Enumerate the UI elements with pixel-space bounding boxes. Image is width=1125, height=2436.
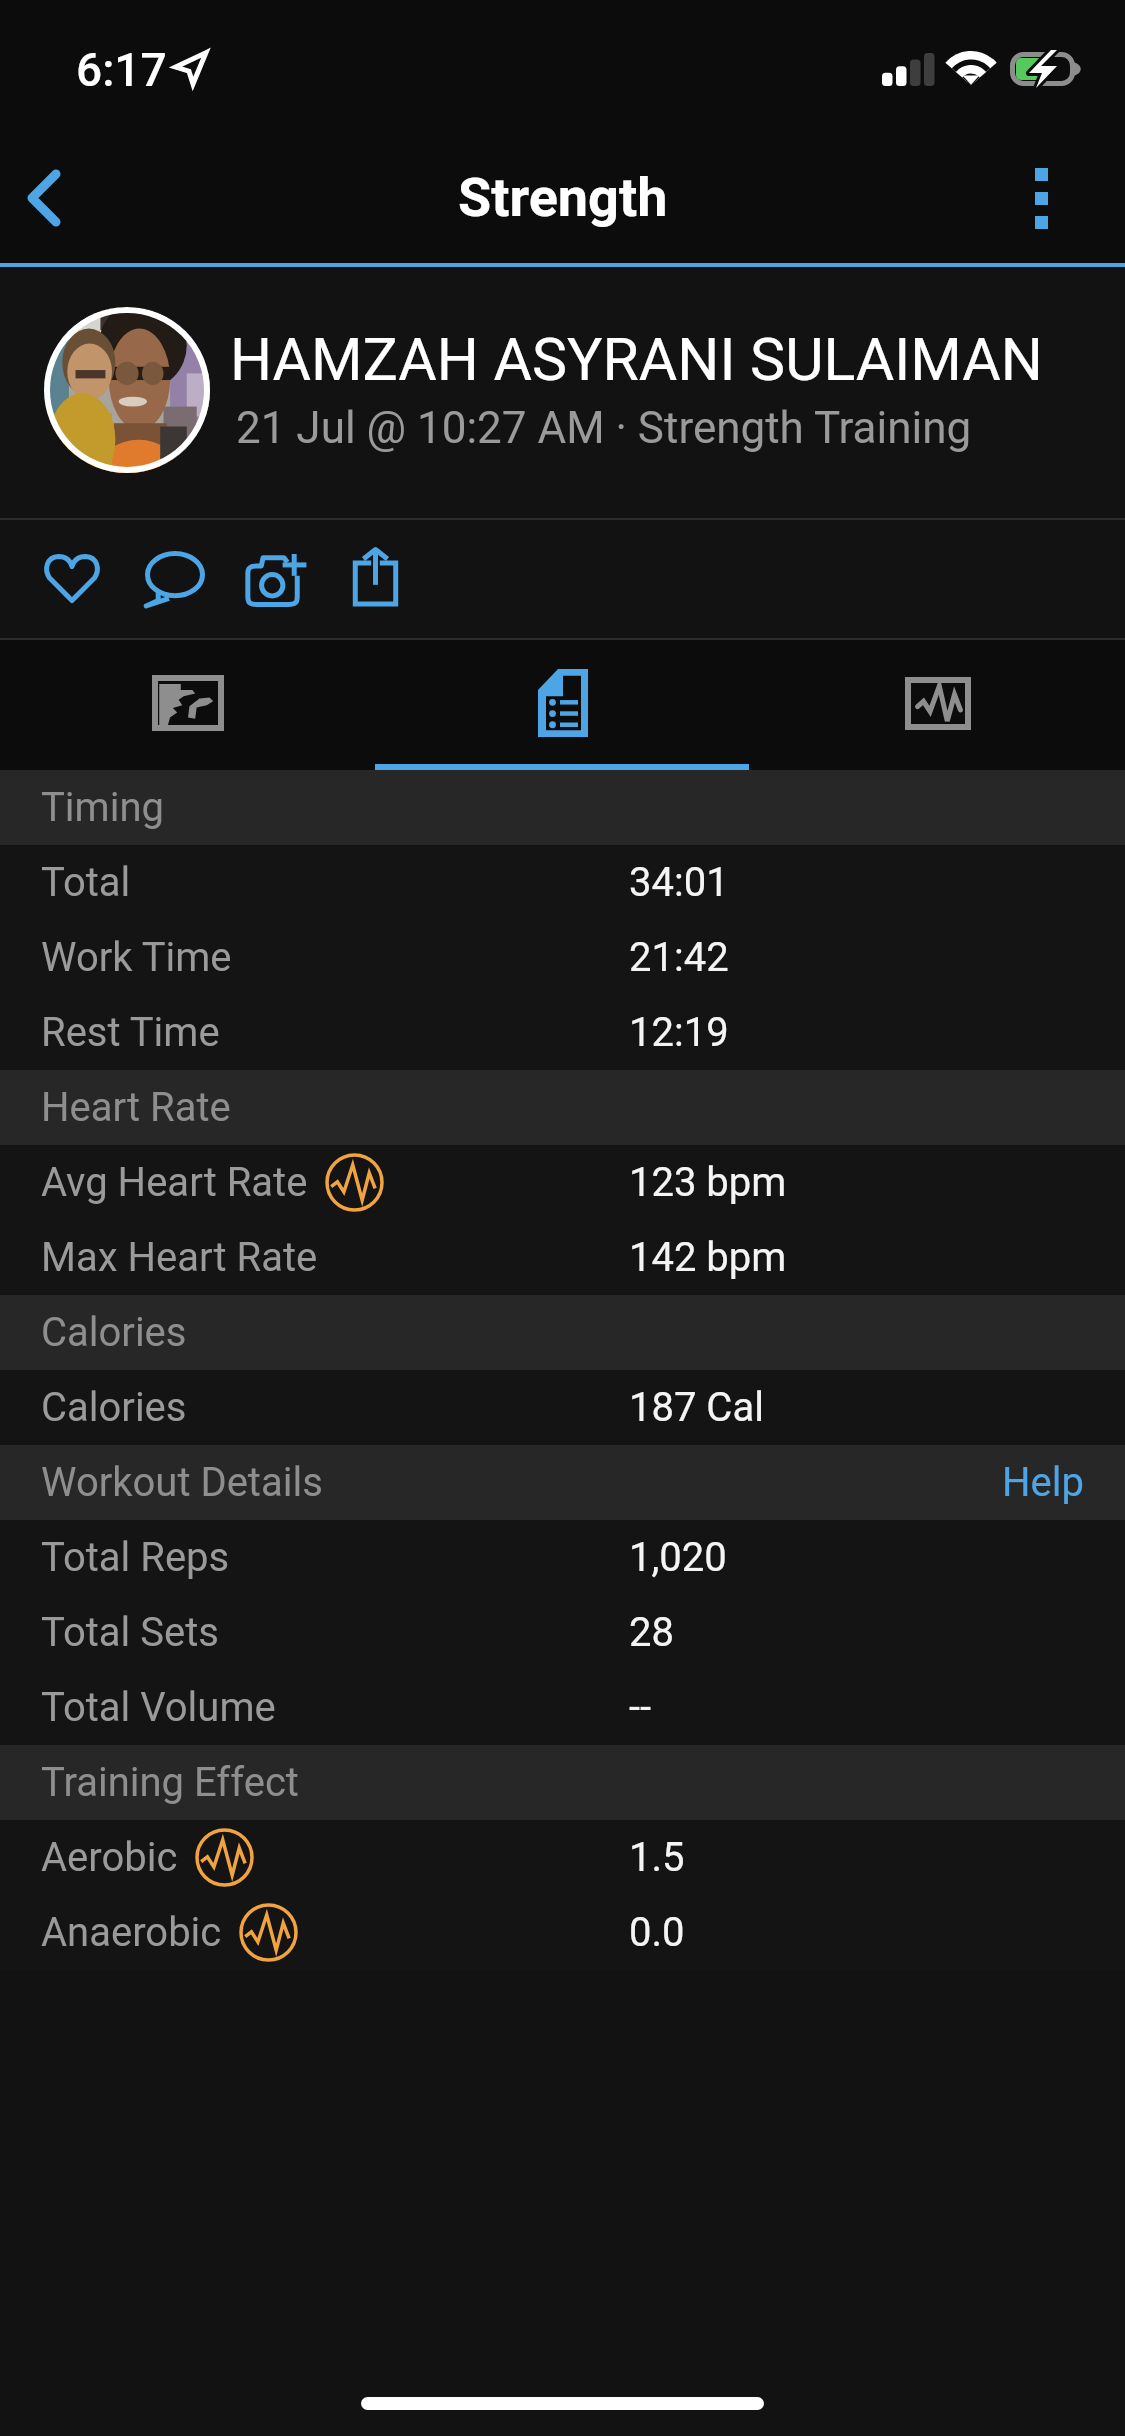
staticText: Anaerobic — [41, 1909, 222, 1956]
staticText: Workout Details — [41, 1459, 323, 1506]
staticText: Heart Rate — [41, 1084, 231, 1131]
button[interactable]: Comment — [123, 520, 227, 638]
staticText: Max Heart Rate — [41, 1234, 318, 1281]
button[interactable]: Total Reps — [0, 1520, 1125, 1595]
button[interactable]: Total — [0, 845, 1125, 920]
staticText: Avg Heart Rate — [41, 1159, 308, 1206]
staticText: Rest Time — [41, 1009, 220, 1056]
staticText: 28 — [629, 1609, 674, 1656]
staticText: 142 bpm — [629, 1234, 787, 1281]
button[interactable]: Aerobic — [0, 1820, 1125, 1895]
staticText: 12:19 — [629, 1009, 729, 1056]
staticText: -- — [629, 1684, 652, 1731]
button[interactable]: Work Time — [0, 920, 1125, 995]
button[interactable]: Charts — [750, 640, 1125, 770]
button[interactable]: More options — [1021, 138, 1125, 258]
button[interactable]: Total Sets — [0, 1595, 1125, 1670]
staticText: 34:01 — [629, 859, 729, 906]
staticText: 123 bpm — [629, 1159, 787, 1206]
button[interactable]: Anaerobic — [0, 1895, 1125, 1970]
button[interactable]: Avg Heart Rate — [0, 1145, 1125, 1220]
staticText: 0.0 — [629, 1909, 685, 1956]
button[interactable]: Map — [0, 640, 375, 770]
staticText: 21:42 — [629, 934, 729, 981]
button[interactable]: HAMZAH ASYRANI SULAIMAN — [0, 267, 1125, 518]
button[interactable]: Rest Time — [0, 995, 1125, 1070]
staticText: Calories — [41, 1309, 187, 1356]
button[interactable]: Max Heart Rate — [0, 1220, 1125, 1295]
button[interactable]: Details — [375, 640, 750, 770]
button[interactable]: Help — [961, 1445, 1125, 1520]
button[interactable]: Back — [0, 138, 112, 258]
staticText: 1.5 — [629, 1834, 685, 1881]
button[interactable]: Total Volume — [0, 1670, 1125, 1745]
staticText: Total Volume — [41, 1684, 276, 1731]
staticText: Total Reps — [41, 1534, 230, 1581]
staticText: Strength — [458, 166, 668, 229]
staticText: 6:17 — [76, 43, 167, 97]
button[interactable]: Like — [22, 520, 122, 638]
staticText: Help — [1002, 1459, 1084, 1506]
staticText: Total Sets — [41, 1609, 219, 1656]
button[interactable]: Calories — [0, 1370, 1125, 1445]
staticText: HAMZAH ASYRANI SULAIMAN — [230, 325, 1043, 394]
staticText: Total — [41, 859, 131, 906]
staticText: Work Time — [41, 934, 232, 981]
button[interactable]: Share — [332, 520, 419, 638]
staticText: Calories — [41, 1384, 187, 1431]
button[interactable]: Add photo — [224, 520, 329, 638]
staticText: Timing — [41, 784, 164, 831]
staticText: 1,020 — [629, 1534, 727, 1581]
staticText: Aerobic — [41, 1834, 178, 1881]
staticText: Training Effect — [41, 1759, 299, 1806]
staticText: 187 Cal — [629, 1384, 764, 1431]
staticText: 21 Jul @ 10:27 AM · Strength Training — [236, 402, 972, 454]
